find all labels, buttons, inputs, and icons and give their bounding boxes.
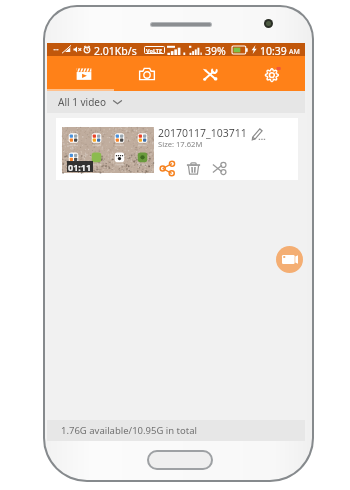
staticText: 1.76G available/10.95G in total xyxy=(61,424,197,437)
button[interactable]: 01:11 xyxy=(56,118,298,180)
staticText: AM xyxy=(289,47,300,57)
staticText: All 1 video xyxy=(58,95,106,109)
button[interactable]: Camera xyxy=(115,56,178,91)
button[interactable]: Rename xyxy=(252,127,266,141)
button[interactable]: Share xyxy=(159,160,176,177)
staticText: 2.01Kb/s xyxy=(94,44,137,57)
button[interactable]: Settings xyxy=(241,56,304,91)
button[interactable]: Trim xyxy=(211,160,228,177)
staticText: 10:39 xyxy=(260,44,287,57)
button[interactable]: All 1 video xyxy=(47,91,305,113)
staticText: 39% xyxy=(205,44,226,57)
button[interactable]: Videos xyxy=(52,56,115,91)
staticText: 20170117_103711 xyxy=(158,126,247,140)
staticText: 01:11 xyxy=(68,161,92,172)
button[interactable]: Delete xyxy=(185,160,202,177)
staticText: Size: 17.62M xyxy=(158,139,203,149)
staticText: VoLTE xyxy=(146,47,163,54)
button[interactable]: Record video xyxy=(276,246,303,273)
button[interactable]: Tools xyxy=(178,56,241,91)
